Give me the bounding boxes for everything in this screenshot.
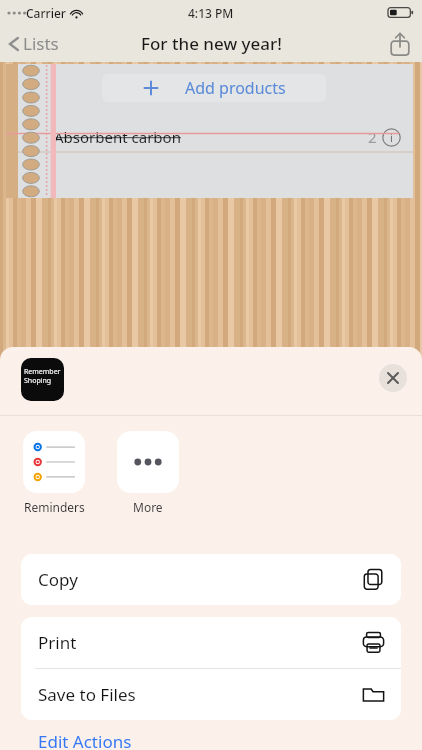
button[interactable]: Absorbent carbon xyxy=(6,120,413,154)
button[interactable]: Print xyxy=(21,617,401,668)
staticText: Add products xyxy=(185,77,286,99)
button[interactable]: Close xyxy=(379,364,407,392)
button[interactable]: More xyxy=(112,431,184,515)
staticText: Reminders xyxy=(24,499,85,515)
button[interactable]: Reminders xyxy=(18,431,90,515)
button[interactable]: Info xyxy=(382,128,401,147)
button[interactable]: Copy xyxy=(21,554,401,605)
staticText: Save to Files xyxy=(38,683,136,706)
staticText: Copy xyxy=(38,568,78,591)
button[interactable]: Share xyxy=(390,32,422,56)
staticText: Lists xyxy=(23,32,59,55)
button[interactable]: Save to Files xyxy=(21,669,401,720)
staticText: i xyxy=(390,130,393,145)
staticText: Remember Shoping xyxy=(24,367,61,385)
staticText: More xyxy=(133,499,163,515)
staticText: Print xyxy=(38,631,77,654)
staticText: Absorbent carbon xyxy=(54,127,181,147)
button[interactable]: Edit Actions xyxy=(38,730,132,750)
staticText: 2 xyxy=(368,127,377,147)
staticText: Carrier xyxy=(26,5,66,21)
staticText: For the new year! xyxy=(141,32,282,55)
button[interactable]: Remember Shoping xyxy=(21,358,64,401)
button[interactable]: Lists xyxy=(0,26,69,61)
staticText: 4:13 PM xyxy=(188,5,234,21)
button[interactable]: Add products xyxy=(102,74,326,102)
